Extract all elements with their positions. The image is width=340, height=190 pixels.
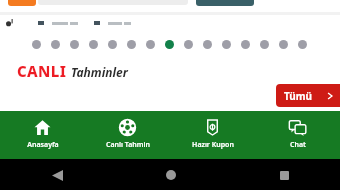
button[interactable]: Tümü (276, 84, 340, 107)
button[interactable]: Page 3 (70, 40, 79, 49)
button[interactable]: Page 8 (165, 40, 174, 49)
staticText: Tahminler (71, 64, 128, 80)
button[interactable]: Home (158, 162, 184, 188)
button[interactable]: Page 13 (260, 40, 269, 49)
button[interactable]: Chat (255, 111, 340, 159)
button[interactable]: Page 2 (51, 40, 60, 49)
button[interactable]: Page 1 (32, 40, 41, 49)
button[interactable]: Page 4 (89, 40, 98, 49)
staticText: Anasayfa (27, 140, 59, 150)
button[interactable]: Page 10 (203, 40, 212, 49)
button[interactable]: Hazır Kupon (170, 111, 255, 159)
button[interactable]: Page 6 (127, 40, 136, 49)
staticText: Chat (290, 140, 306, 150)
staticText: CANLI (17, 61, 67, 81)
button[interactable]: Recents (271, 162, 297, 188)
button[interactable]: Page 15 (298, 40, 307, 49)
button[interactable]: Page 11 (222, 40, 231, 49)
button[interactable]: Teal tag (196, 0, 254, 6)
button[interactable]: Canlı Tahmin (85, 111, 170, 159)
button[interactable]: Back (44, 162, 70, 188)
staticText: Tümü (284, 89, 313, 103)
staticText: Canlı Tahmin (106, 140, 150, 150)
button[interactable]: Anasayfa (0, 111, 85, 159)
button[interactable]: Page 9 (184, 40, 193, 49)
button[interactable]: Page 12 (241, 40, 250, 49)
staticText: Hazır Kupon (192, 140, 234, 150)
button[interactable]: Page 5 (108, 40, 117, 49)
button[interactable]: Orange tag (8, 0, 36, 6)
button[interactable]: Page 7 (146, 40, 155, 49)
button[interactable]: Page 14 (279, 40, 288, 49)
